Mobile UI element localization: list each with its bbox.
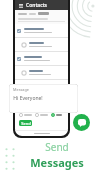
button[interactable] <box>15 52 68 65</box>
staticText: Contacts <box>26 2 47 9</box>
staticText: Send <box>45 140 69 154</box>
button[interactable] <box>15 38 68 51</box>
button[interactable]: Message <box>9 84 78 113</box>
button[interactable]: Send message <box>73 114 90 131</box>
staticText: Message <box>13 87 29 92</box>
button[interactable] <box>38 12 49 15</box>
staticText: Send App Message <box>19 83 60 89</box>
button[interactable] <box>15 24 68 37</box>
button[interactable]: Send <box>19 120 32 126</box>
button[interactable] <box>15 66 68 79</box>
staticText: Hi Everyone! <box>13 95 43 102</box>
staticText: Send <box>21 121 31 126</box>
button[interactable]: Menu <box>18 3 23 8</box>
staticText: Messages <box>30 155 84 170</box>
